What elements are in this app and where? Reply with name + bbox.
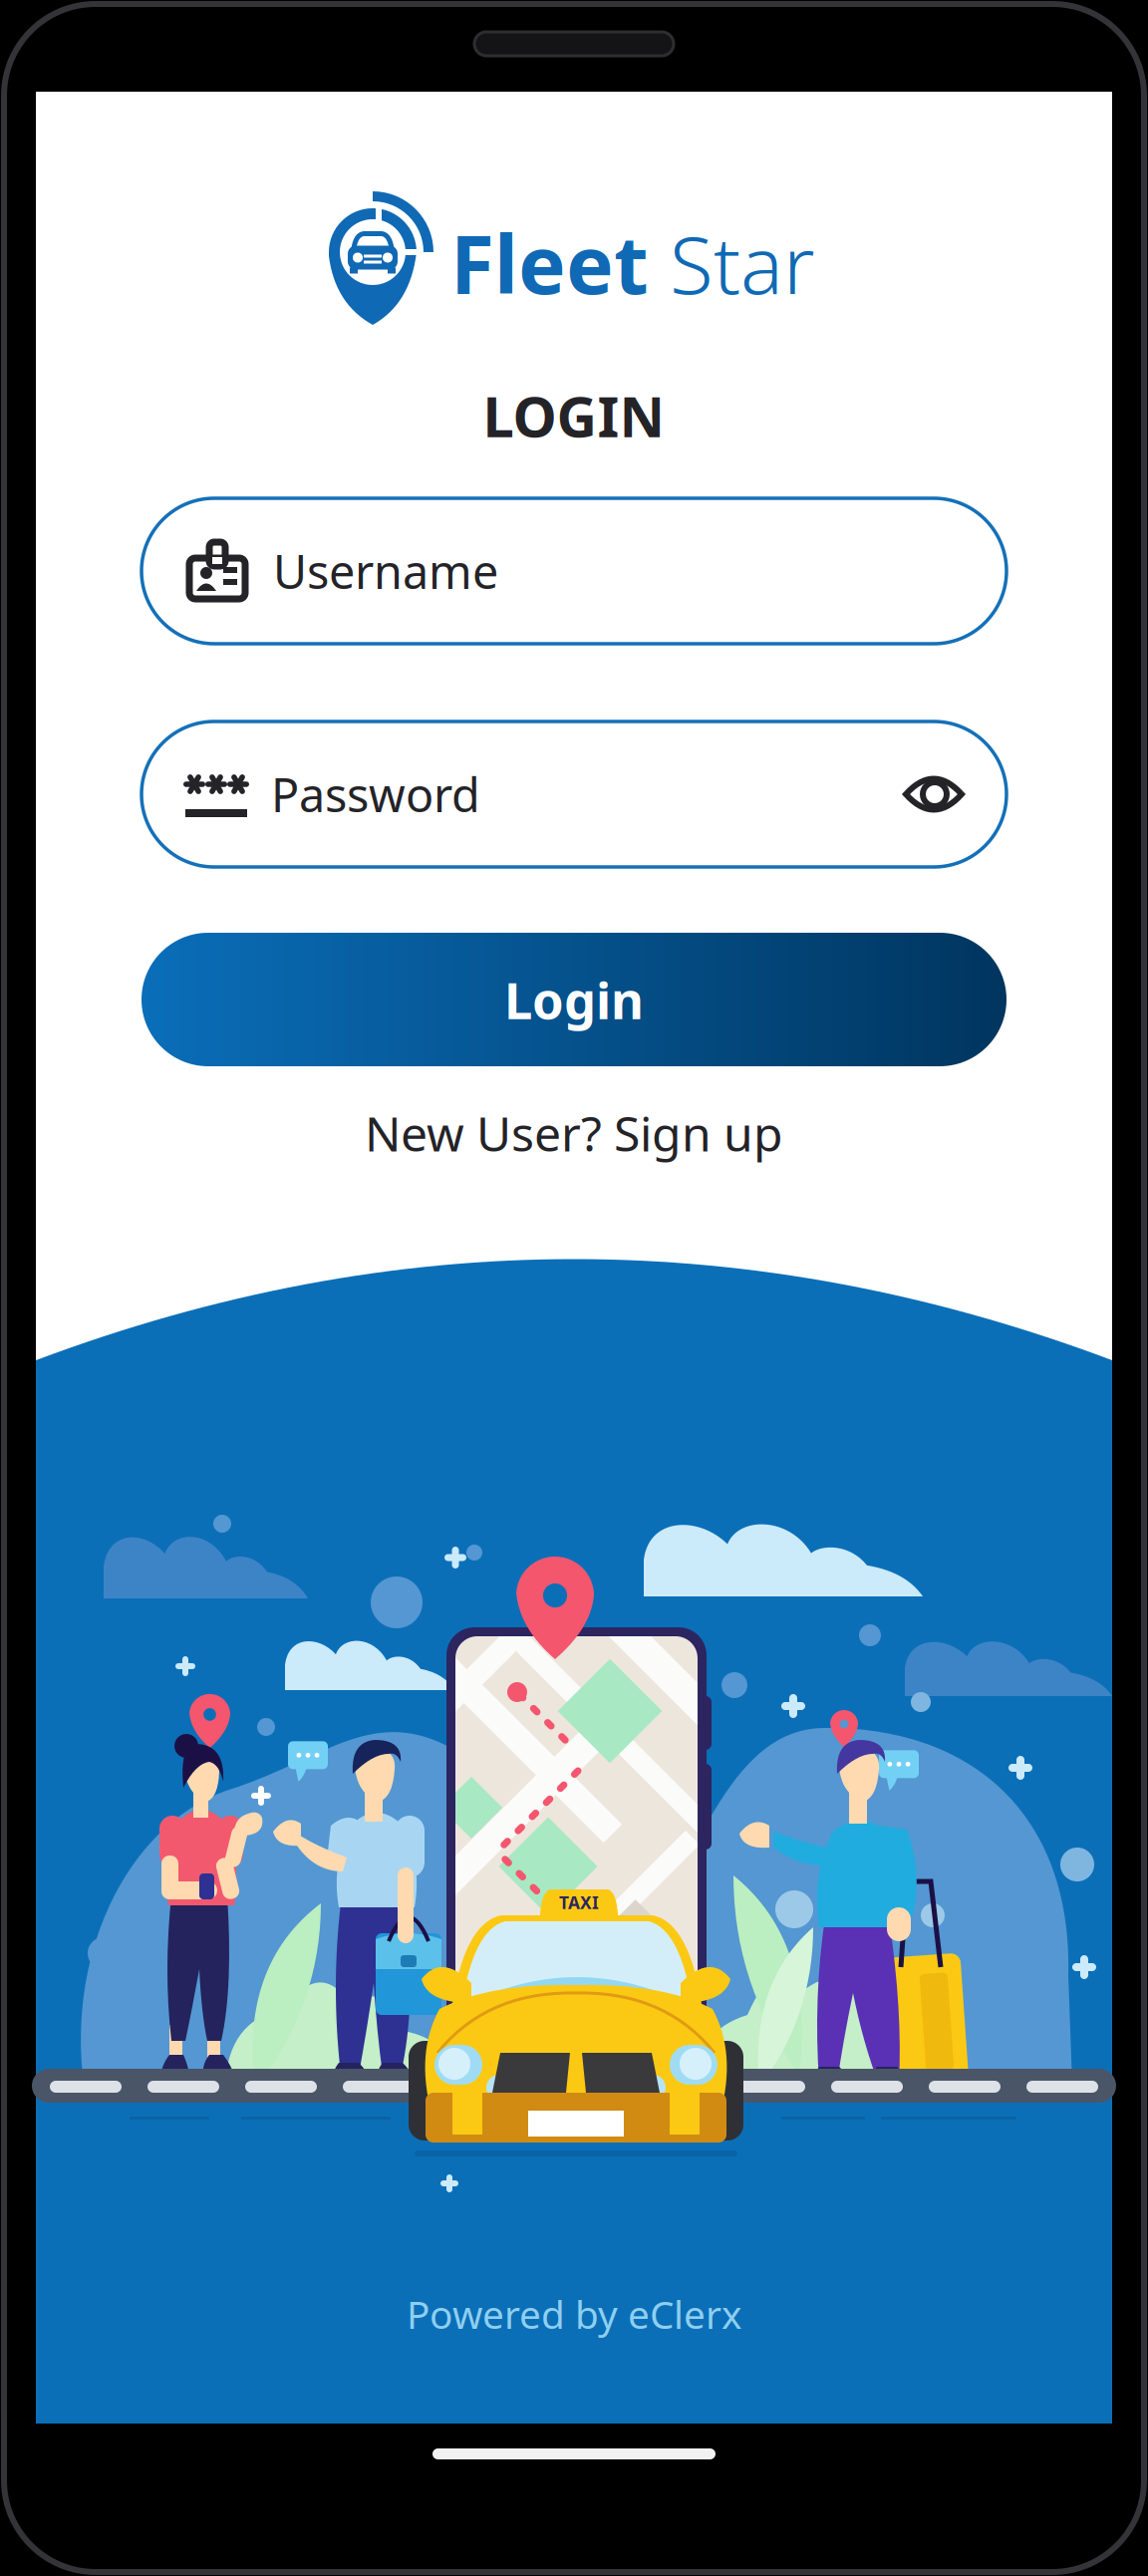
staticText: Login bbox=[504, 966, 644, 1033]
staticText: LOGIN bbox=[483, 378, 665, 453]
button[interactable]: Login bbox=[142, 933, 1006, 1066]
button[interactable]: Password bbox=[142, 721, 1006, 867]
button[interactable]: Username bbox=[142, 498, 1006, 644]
staticText: Username bbox=[273, 540, 498, 602]
staticText: TAXI bbox=[559, 1891, 599, 1914]
staticText: Password bbox=[271, 763, 480, 825]
staticText: New User? Sign up bbox=[365, 1101, 783, 1165]
button[interactable]: New User? Sign up bbox=[36, 1098, 1112, 1168]
staticText: Powered by eClerx bbox=[407, 2288, 741, 2339]
staticText: Fleet bbox=[450, 210, 649, 316]
staticText: Star bbox=[649, 210, 815, 316]
